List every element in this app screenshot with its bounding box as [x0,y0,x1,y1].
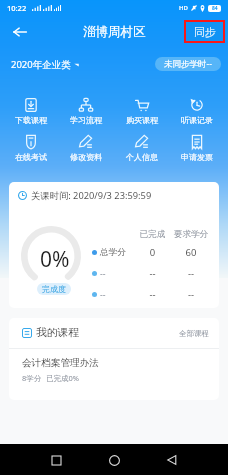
staticText: 10:22 [7,3,27,13]
button[interactable]: Back [10,22,30,42]
staticText: 60 [173,246,209,259]
button[interactable]: 同步 [185,22,224,41]
button[interactable]: 申请发票 [172,135,222,162]
button[interactable]: 下载课程 [6,98,56,125]
staticText: 修改资料 [70,152,102,162]
staticText: 0 [137,246,168,259]
staticText: 2020年企业类 [11,58,71,71]
staticText: 要求学分 [173,229,209,240]
staticText: 下载课程 [15,115,47,125]
staticText: 淄博周村区 [83,24,146,40]
staticText: 申请发票 [181,152,213,162]
staticText: -- [137,267,168,280]
staticText: 个人信息 [126,152,158,162]
button[interactable]: 个人信息 [117,135,167,162]
button[interactable]: Home [106,452,122,468]
button[interactable]: 未同步学时-- [155,57,221,71]
staticText: 已完成0% [46,373,80,383]
button[interactable]: 2020年企业类 [11,58,79,71]
staticText: 8学分 [22,373,42,383]
button[interactable]: 在线考试 [6,135,56,162]
staticText: 听课记录 [181,115,213,125]
staticText: 在线考试 [15,152,47,162]
staticText: 我的课程 [36,326,80,340]
staticText: 学习流程 [70,115,102,125]
staticText: -- [137,288,168,301]
staticText: 关课时间: 2020/9/3 23:59:59 [31,189,152,202]
staticText: -- [100,289,106,301]
button[interactable]: Recents [48,452,64,468]
staticText: -- [173,267,209,280]
staticText: 总学分 [100,247,126,258]
staticText: -- [100,268,106,280]
staticText: 0% [40,245,70,274]
staticText: 完成度 [42,284,66,294]
button[interactable]: 全部课程 [179,329,209,338]
staticText: 同步 [194,25,216,39]
staticText: 全部课程 [179,329,209,338]
staticText: -- [173,288,209,301]
staticText: 购买课程 [126,115,158,125]
button[interactable]: 修改资料 [61,135,111,162]
staticText: 未同步学时-- [164,58,212,70]
button[interactable]: 学习流程 [61,98,111,125]
staticText: 84 [212,5,218,12]
staticText: 已完成 [137,229,168,240]
button[interactable]: 听课记录 [172,98,222,125]
staticText: 会计档案管理办法 [22,357,99,369]
staticText: HD [179,4,188,12]
button[interactable]: Back [164,452,180,468]
button[interactable]: 会计档案管理办法 [9,349,219,400]
button[interactable]: 购买课程 [117,98,167,125]
